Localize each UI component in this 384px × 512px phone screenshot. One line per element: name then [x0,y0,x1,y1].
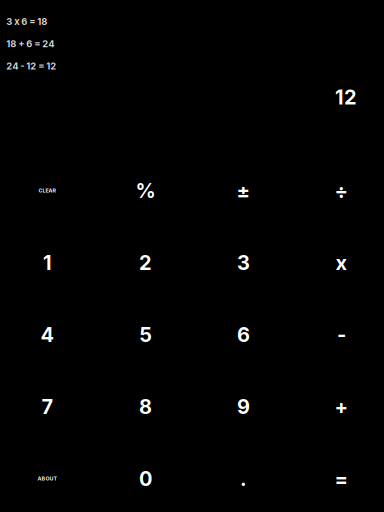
button[interactable]: 2 [97,227,193,299]
button[interactable]: ABOUT [0,443,95,512]
staticText: 3 x​ 6 = 18 [6,16,47,27]
button[interactable]: 5 [97,299,193,371]
staticText: 6 [237,323,250,347]
button[interactable]: Plus [293,371,384,443]
staticText: 12 [335,85,357,109]
staticText: % [135,179,155,203]
button[interactable]: 8 [97,371,193,443]
staticText: 0 [139,467,152,491]
button[interactable]: 1 [0,227,95,299]
staticText: ABOUT [37,475,57,482]
staticText: . [240,467,247,491]
button[interactable]: Minus [293,299,384,371]
staticText: 24 - 12 = 12 [6,60,56,72]
staticText: 5 [139,323,151,347]
staticText: - [337,323,346,347]
staticText: + [334,395,348,419]
button[interactable]: Multiply [293,227,384,299]
staticText: ÷ [334,179,348,203]
button[interactable]: CLEAR [0,155,95,227]
button[interactable]: Plus minus [195,155,291,227]
staticText: x [335,251,347,275]
button[interactable]: Divide [293,155,384,227]
staticText: CLEAR [38,187,56,194]
staticText: 1 [43,251,52,275]
button[interactable]: 6 [195,299,291,371]
button[interactable]: 0 [97,443,193,512]
staticText: 18 + 6 = 24 [6,38,54,49]
staticText: = [334,467,348,491]
staticText: 2 [139,251,152,275]
button[interactable]: 7 [0,371,95,443]
staticText: 8 [139,395,152,419]
button[interactable]: Decimal point [195,443,291,512]
button[interactable]: Percent [97,155,193,227]
button[interactable]: Equals [293,443,384,512]
staticText: 3 [237,251,250,275]
staticText: ± [236,179,250,203]
staticText: 9 [237,395,250,419]
staticText: 4 [40,323,54,347]
button[interactable]: 3 [195,227,291,299]
button[interactable]: 9 [195,371,291,443]
staticText: 7 [41,395,53,419]
button[interactable]: 4 [0,299,95,371]
